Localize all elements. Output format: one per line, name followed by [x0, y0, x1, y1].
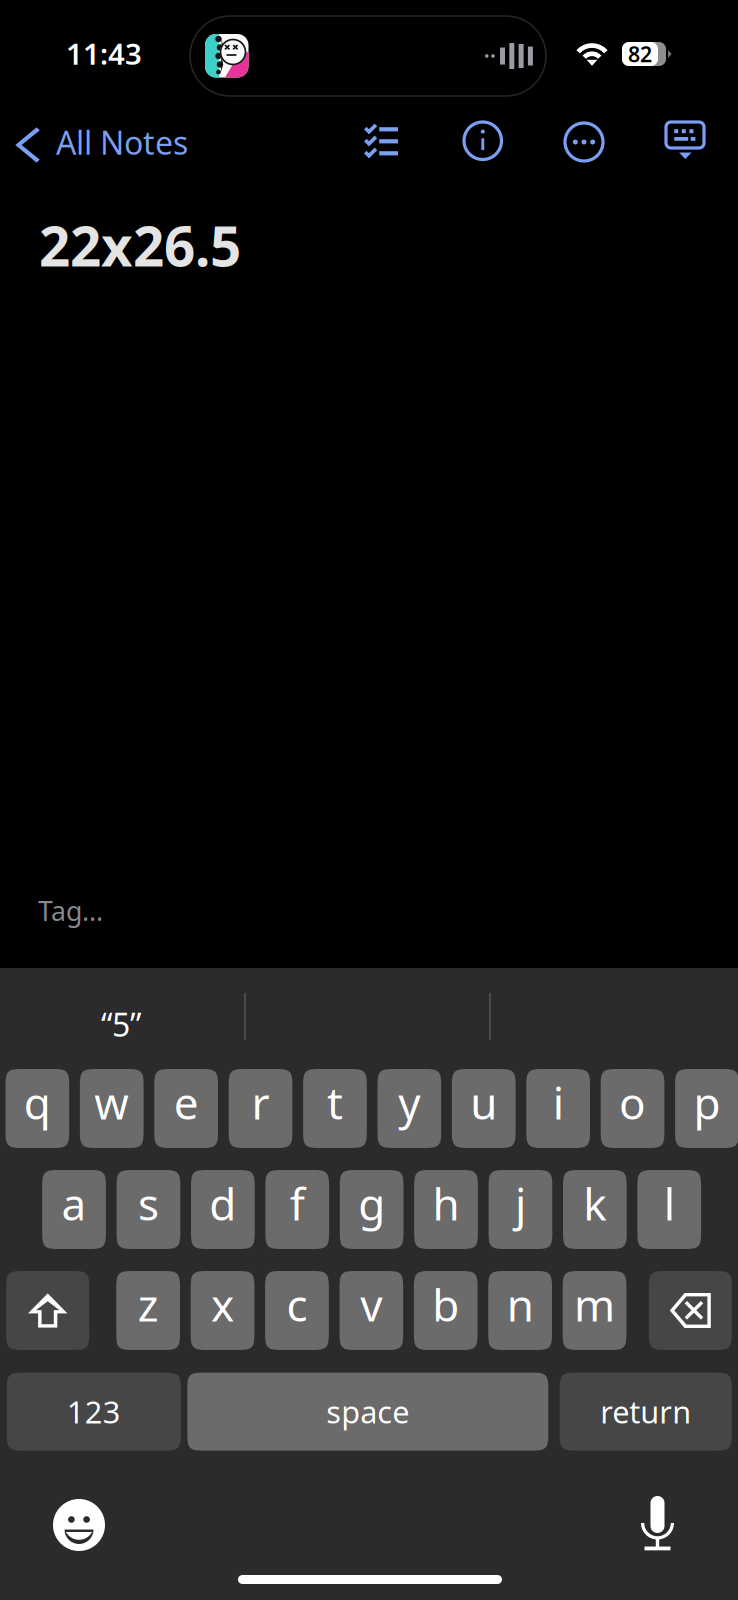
staticText: v	[360, 1275, 382, 1334]
staticText: j	[515, 1174, 526, 1233]
button[interactable]: r	[229, 1069, 292, 1148]
button[interactable]: f	[265, 1170, 329, 1249]
button[interactable]: Shift	[6, 1271, 89, 1350]
button[interactable]: Return	[560, 1373, 732, 1451]
staticText: a	[62, 1174, 87, 1233]
staticText: u	[470, 1073, 497, 1132]
staticText: w	[94, 1073, 129, 1132]
button[interactable]: l	[637, 1170, 701, 1249]
staticText: p	[693, 1073, 720, 1132]
staticText: c	[286, 1275, 307, 1334]
button[interactable]: Emoji	[53, 1499, 105, 1551]
button[interactable]: x	[191, 1271, 254, 1350]
staticText: “5”	[101, 1003, 141, 1045]
staticText: return	[600, 1391, 691, 1432]
button[interactable]: Delete	[649, 1271, 732, 1350]
staticText: b	[432, 1275, 459, 1334]
staticText: d	[209, 1174, 236, 1233]
button[interactable]: d	[191, 1170, 255, 1249]
staticText: x	[211, 1275, 234, 1334]
staticText: g	[358, 1174, 385, 1233]
staticText: n	[507, 1275, 534, 1334]
staticText: s	[138, 1174, 159, 1233]
button[interactable]: n	[488, 1271, 552, 1350]
staticText: h	[433, 1174, 460, 1233]
button[interactable]: Checklist	[364, 126, 398, 159]
staticText: o	[619, 1073, 646, 1132]
staticText: Tag...	[38, 893, 103, 928]
staticText: r	[252, 1073, 270, 1132]
button[interactable]: s	[117, 1170, 180, 1249]
button[interactable]: z	[116, 1271, 180, 1350]
button[interactable]: Note Info	[464, 122, 501, 159]
staticText: t	[327, 1073, 343, 1132]
button[interactable]: q	[5, 1069, 69, 1148]
button[interactable]: m	[563, 1271, 626, 1350]
button[interactable]: Space	[187, 1373, 548, 1451]
staticText: z	[138, 1275, 159, 1334]
button[interactable]: p	[675, 1069, 738, 1148]
button[interactable]: j	[489, 1170, 552, 1249]
staticText: q	[24, 1073, 51, 1132]
staticText: 123	[67, 1391, 121, 1432]
button[interactable]: t	[303, 1069, 367, 1148]
staticText: f	[290, 1174, 305, 1233]
button[interactable]: v	[339, 1271, 403, 1350]
button[interactable]: g	[340, 1170, 403, 1249]
button[interactable]: u	[452, 1069, 516, 1148]
button[interactable]: y	[377, 1069, 441, 1148]
staticText: e	[174, 1073, 199, 1132]
button[interactable]: More	[565, 123, 603, 161]
button[interactable]: h	[414, 1170, 478, 1249]
button[interactable]: c	[265, 1271, 329, 1350]
button[interactable]: Hide Keyboard	[666, 122, 704, 160]
button[interactable]: Numbers	[7, 1373, 181, 1451]
button[interactable]: Dictation	[637, 1496, 678, 1551]
staticText: All Notes	[56, 121, 188, 163]
staticText: 82	[628, 40, 652, 68]
button[interactable]: w	[80, 1069, 144, 1148]
button[interactable]: a	[42, 1170, 106, 1249]
staticText: 22x26.5	[39, 209, 241, 282]
staticText: m	[574, 1275, 615, 1334]
button[interactable]: b	[414, 1271, 478, 1350]
staticText: k	[583, 1174, 606, 1233]
button[interactable]: o	[601, 1069, 664, 1148]
staticText: l	[664, 1174, 675, 1233]
staticText: i	[553, 1073, 564, 1132]
button[interactable]: k	[563, 1170, 627, 1249]
staticText: y	[398, 1073, 420, 1132]
staticText: 11:43	[66, 34, 142, 73]
button[interactable]: e	[154, 1069, 218, 1148]
staticText: space	[326, 1391, 409, 1432]
button[interactable]: i	[526, 1069, 590, 1148]
button[interactable]: All Notes	[8, 112, 198, 174]
